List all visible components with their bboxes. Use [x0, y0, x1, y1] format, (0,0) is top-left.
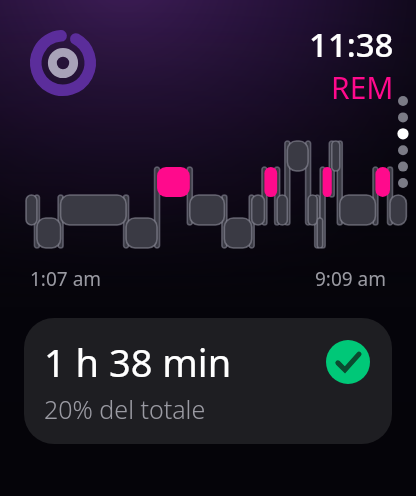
- staticText: 1:07 am: [30, 266, 102, 292]
- staticText: REM: [331, 67, 394, 108]
- button[interactable]: Sleep app: [30, 30, 96, 96]
- button[interactable]: 11:38: [309, 22, 394, 108]
- staticText: 20% del totale: [44, 392, 206, 426]
- staticText: 1 h 38 min: [44, 336, 232, 388]
- staticText: 9:09 am: [314, 266, 386, 292]
- button[interactable]: 1 h 38 min: [24, 318, 392, 444]
- button[interactable]: [0, 138, 416, 250]
- staticText: 11:38: [309, 22, 394, 67]
